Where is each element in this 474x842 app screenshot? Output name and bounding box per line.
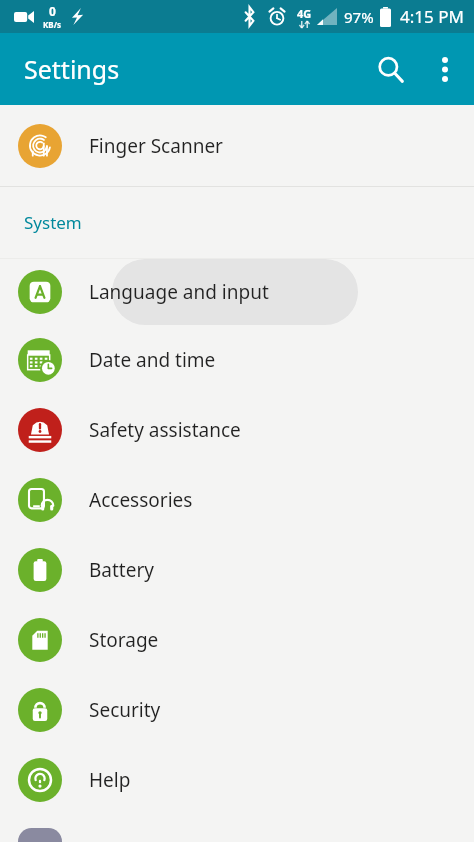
staticText: Date and time [89,347,216,373]
staticText: 4:15 PM [400,5,464,28]
staticText: Accessories [89,487,193,513]
button[interactable]: Finger Scanner [0,105,474,186]
staticText: System [24,211,82,234]
button[interactable] [0,815,474,842]
staticText: Battery [89,557,154,583]
staticText: 97% [344,7,374,27]
staticText: 4G [297,6,312,21]
staticText: Finger Scanner [89,133,223,159]
button[interactable]: Search [361,40,419,98]
button[interactable]: Storage [0,605,474,675]
button[interactable]: Safety assistance [0,395,474,465]
staticText: Storage [89,627,159,653]
staticText: Language and input [89,279,269,305]
staticText: Help [89,767,131,793]
staticText: Safety assistance [89,417,241,443]
button[interactable]: Help [0,745,474,815]
button[interactable]: Date and time [0,325,474,395]
button[interactable]: Battery [0,535,474,605]
button[interactable]: Accessories [0,465,474,535]
staticText: KB/s [43,19,61,30]
staticText: Security [89,697,161,723]
staticText: 0 [49,3,56,19]
button[interactable]: More options [419,43,471,95]
button[interactable]: Language and input [0,259,474,325]
button[interactable]: Security [0,675,474,745]
staticText: Settings [24,52,120,86]
